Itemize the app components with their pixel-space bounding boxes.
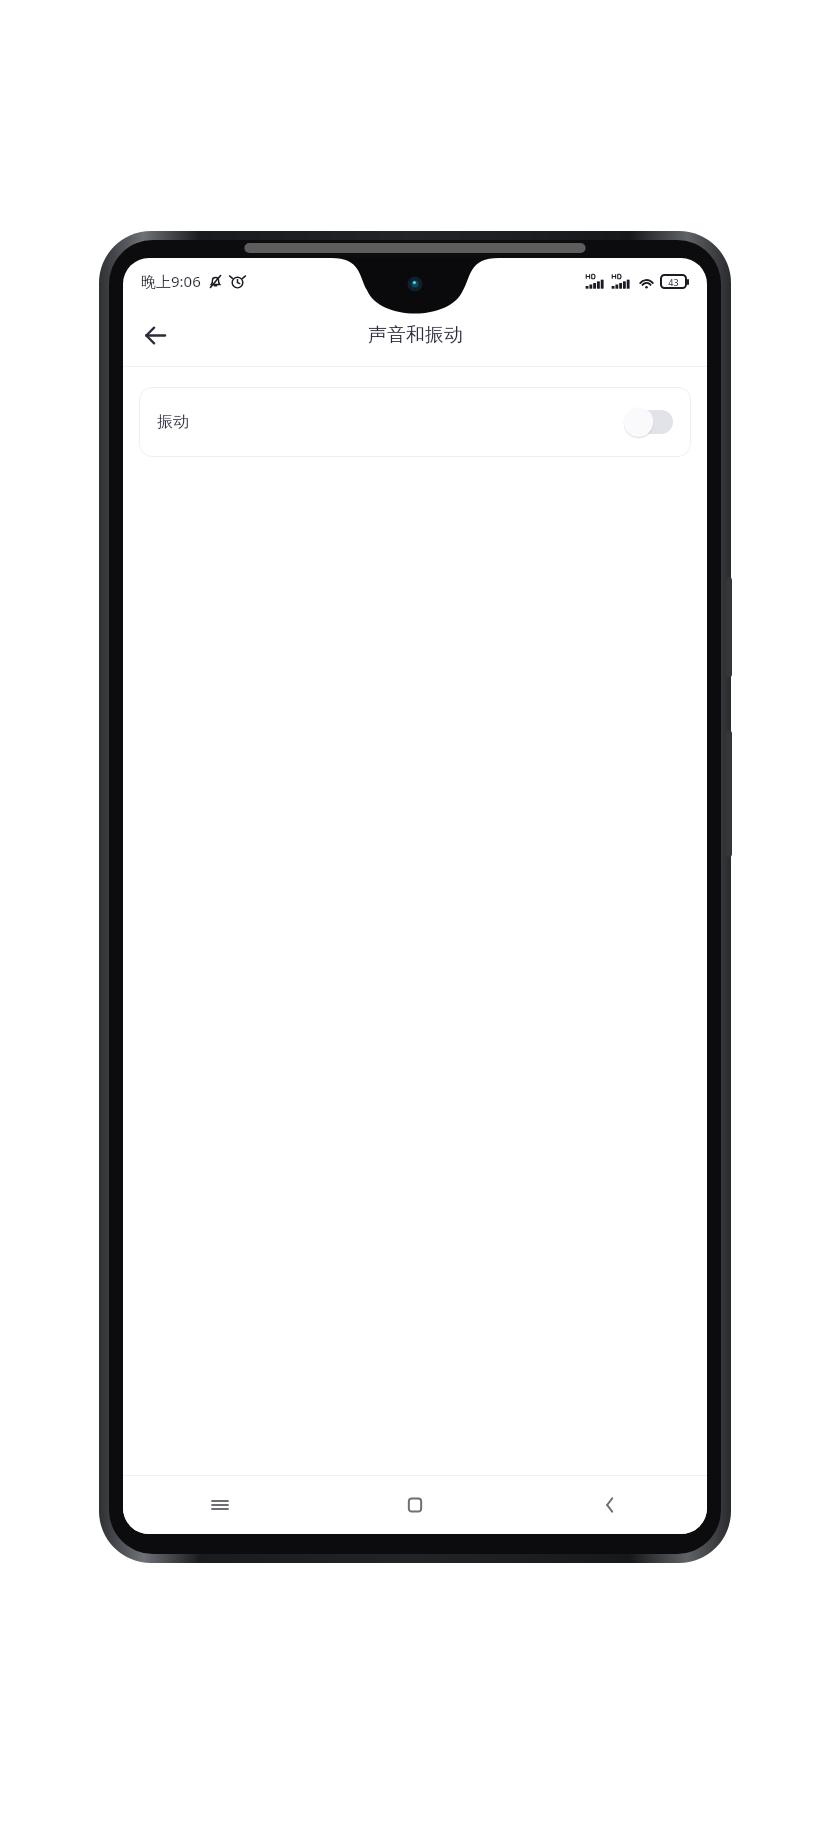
button[interactable]: 返回 xyxy=(131,311,179,359)
staticText: 振动 xyxy=(157,412,189,432)
staticText: 声音和振动 xyxy=(368,323,463,347)
button[interactable]: 振动 xyxy=(139,387,691,457)
button[interactable]: 振动开关 xyxy=(623,407,673,437)
staticText: 晚上9:06 xyxy=(141,271,201,291)
button[interactable]: 最近任务 xyxy=(123,1476,317,1534)
button[interactable]: 返回 xyxy=(512,1476,707,1534)
button[interactable]: 主页 xyxy=(317,1476,512,1534)
staticText: 43 xyxy=(668,276,679,288)
